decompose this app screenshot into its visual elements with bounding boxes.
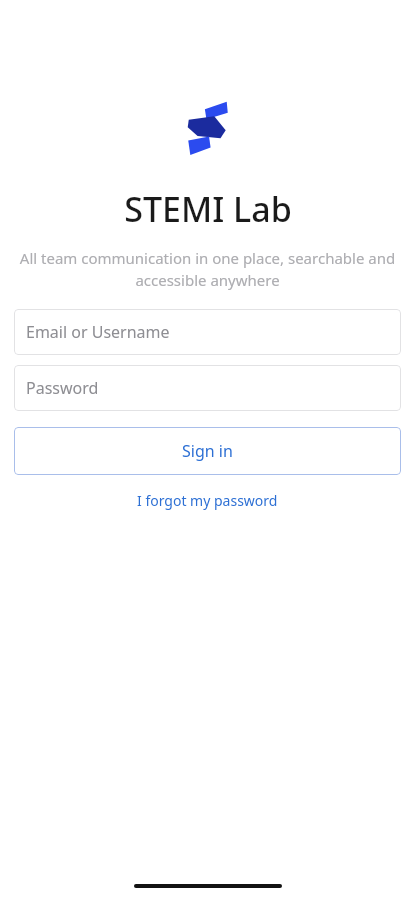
button[interactable]: Password <box>14 365 401 411</box>
staticText: Email or Username <box>26 321 170 343</box>
staticText: STEMI Lab <box>124 186 292 232</box>
button[interactable]: Email or Username <box>14 309 401 355</box>
staticText: Password <box>26 377 99 399</box>
staticText: All team communication in one place, sea… <box>14 248 401 291</box>
staticText: I forgot my password <box>137 491 278 510</box>
other: Home gesture bar <box>134 884 282 888</box>
button[interactable]: I forgot my password <box>125 485 290 516</box>
staticText: Sign in <box>182 440 233 462</box>
button[interactable]: Sign in <box>14 427 401 475</box>
